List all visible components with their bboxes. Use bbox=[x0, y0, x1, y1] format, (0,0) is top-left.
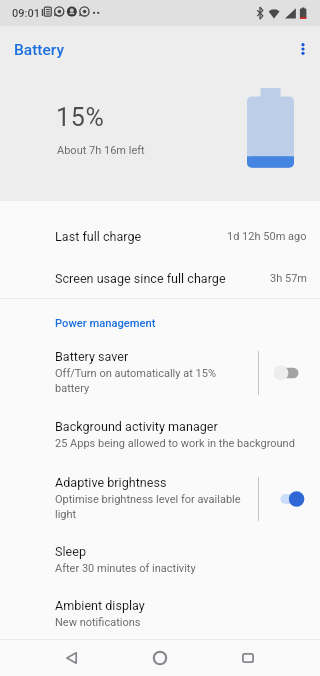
staticText: Background activity manager bbox=[55, 419, 218, 434]
button[interactable]: Screen usage since full charge bbox=[0, 257, 320, 299]
staticText: 3h 57m bbox=[270, 272, 307, 285]
button[interactable]: Sleep bbox=[0, 539, 320, 579]
staticText: New notifications bbox=[55, 616, 141, 629]
button[interactable]: More options bbox=[285, 31, 320, 67]
staticText: 09:01 bbox=[12, 7, 40, 20]
button[interactable]: Home bbox=[140, 639, 180, 676]
staticText: Ambient display bbox=[55, 598, 145, 613]
staticText: Battery bbox=[14, 41, 64, 59]
staticText: 25 Apps being allowed to work in the bac… bbox=[55, 437, 295, 450]
staticText: Adaptive brightness bbox=[55, 475, 167, 490]
button[interactable]: Background activity manager bbox=[0, 414, 320, 454]
staticText: 1d 12h 50m ago bbox=[227, 230, 307, 243]
staticText: 15% bbox=[56, 103, 105, 132]
staticText: Screen usage since full charge bbox=[55, 271, 270, 286]
button[interactable]: Ambient display bbox=[0, 593, 320, 633]
button[interactable]: Adaptive brightness bbox=[0, 470, 320, 522]
staticText: Battery saver bbox=[55, 349, 129, 364]
staticText: After 30 minutes of inactivity bbox=[55, 562, 196, 575]
button[interactable]: Battery saver bbox=[0, 344, 320, 396]
staticText: Last full charge bbox=[55, 229, 227, 244]
staticText: Optimise brightness level for available … bbox=[55, 493, 245, 521]
staticText: Off/Turn on automatically at 15% battery bbox=[55, 367, 223, 395]
button[interactable]: Switch on bbox=[270, 486, 306, 512]
button[interactable]: Last full charge bbox=[0, 215, 320, 257]
button[interactable]: Switch off bbox=[270, 360, 306, 386]
staticText: Power management bbox=[55, 317, 156, 330]
staticText: About 7h 16m left bbox=[57, 144, 145, 157]
button[interactable]: Recent apps bbox=[228, 639, 268, 676]
staticText: Sleep bbox=[55, 544, 86, 559]
button[interactable]: Back bbox=[51, 639, 91, 676]
